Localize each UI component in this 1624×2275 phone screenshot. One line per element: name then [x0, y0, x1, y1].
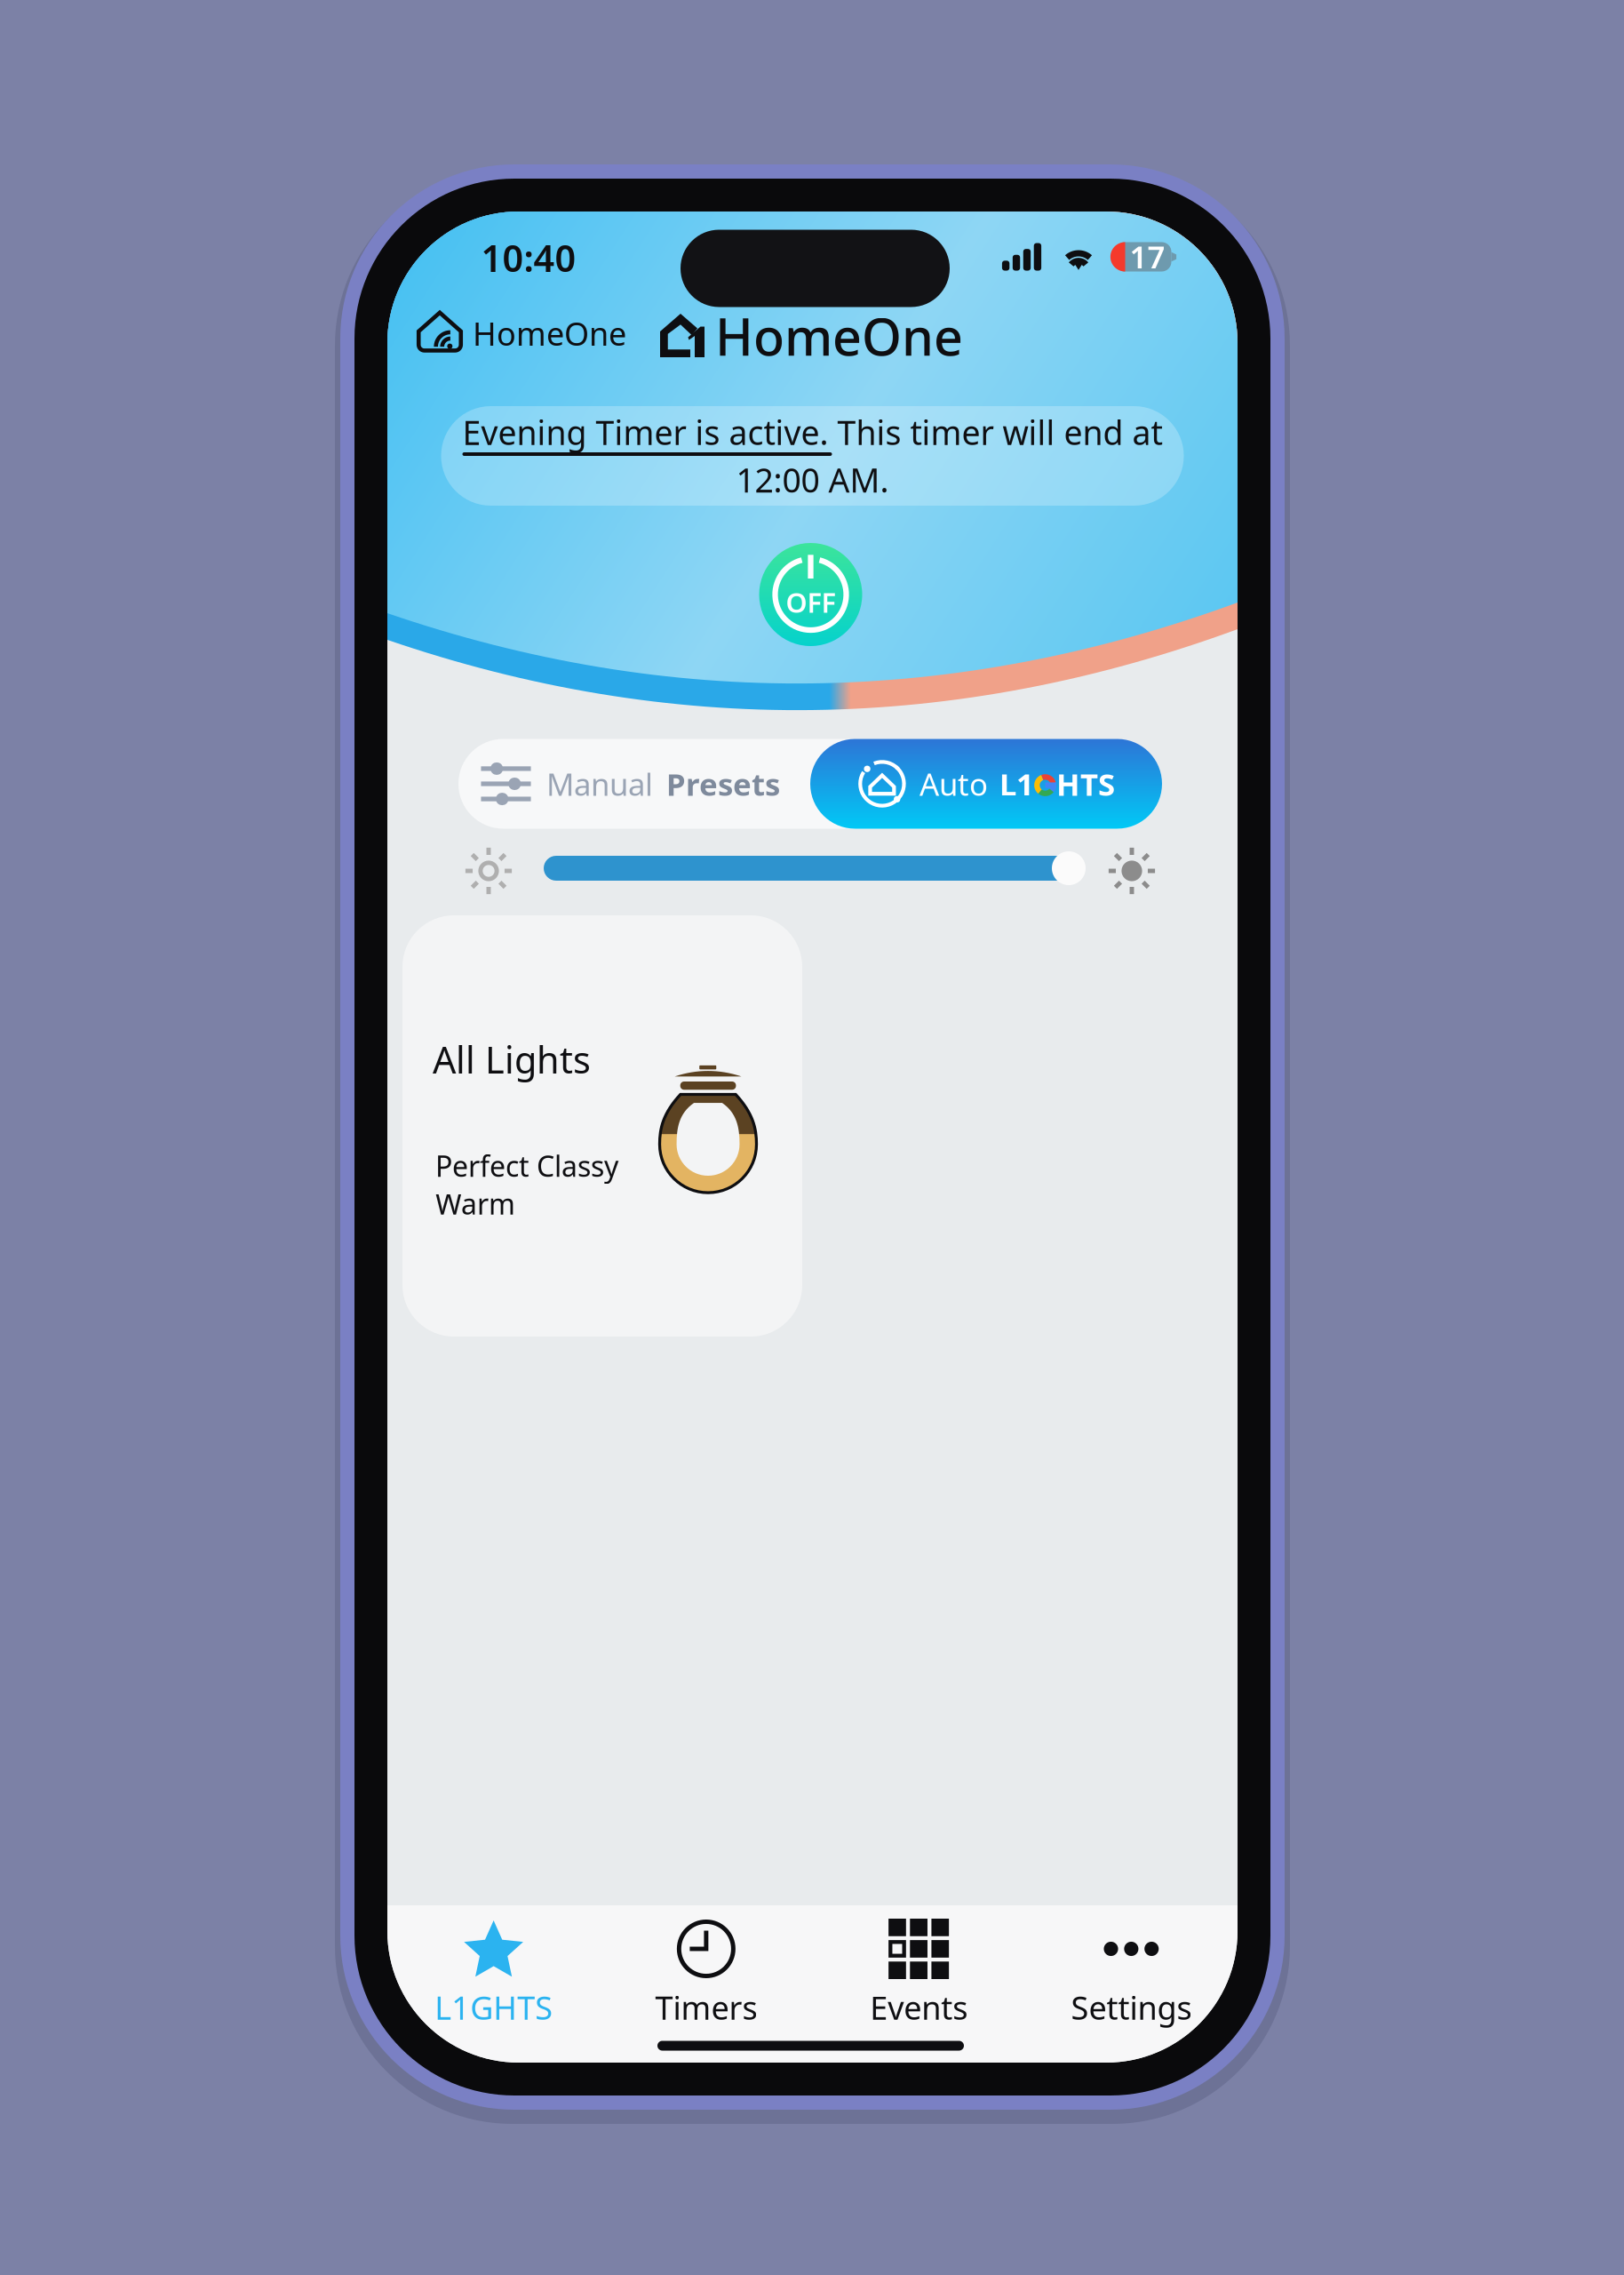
staticText: Evening Timer is active. This timer will… — [462, 410, 1162, 454]
staticText: Auto — [919, 763, 988, 804]
staticText: HomeOne — [715, 302, 963, 370]
button[interactable]: All Lights — [402, 915, 802, 1337]
staticText: L1GHTS — [435, 1986, 553, 2029]
button[interactable]: Settings — [1025, 1889, 1238, 2079]
button[interactable]: Power off — [759, 543, 862, 646]
staticText: Presets — [666, 763, 780, 804]
staticText: Warm — [435, 1185, 515, 1222]
staticText: 10:40 — [481, 233, 576, 282]
staticText: Timers — [655, 1986, 757, 2029]
button[interactable]: L1GHTS — [387, 1889, 600, 2079]
staticText: All Lights — [433, 1035, 591, 1084]
button[interactable]: Auto — [810, 739, 1162, 829]
staticText: L1 — [999, 763, 1034, 804]
staticText: Settings — [1071, 1986, 1192, 2029]
button[interactable]: HomeOne — [416, 307, 628, 360]
staticText: OFF — [786, 584, 836, 620]
staticText: Manual — [546, 763, 653, 804]
staticText: HomeOne — [473, 312, 626, 354]
staticText: Events — [870, 1986, 968, 2029]
staticText: Perfect Classy — [435, 1147, 618, 1185]
button[interactable]: Manual — [458, 739, 831, 829]
button[interactable]: Events — [812, 1889, 1025, 2079]
button[interactable]: Timers — [600, 1889, 812, 2079]
staticText: 12:00 AM. — [736, 458, 889, 502]
staticText: 17 — [1130, 236, 1165, 277]
staticText: HTS — [1056, 763, 1115, 804]
